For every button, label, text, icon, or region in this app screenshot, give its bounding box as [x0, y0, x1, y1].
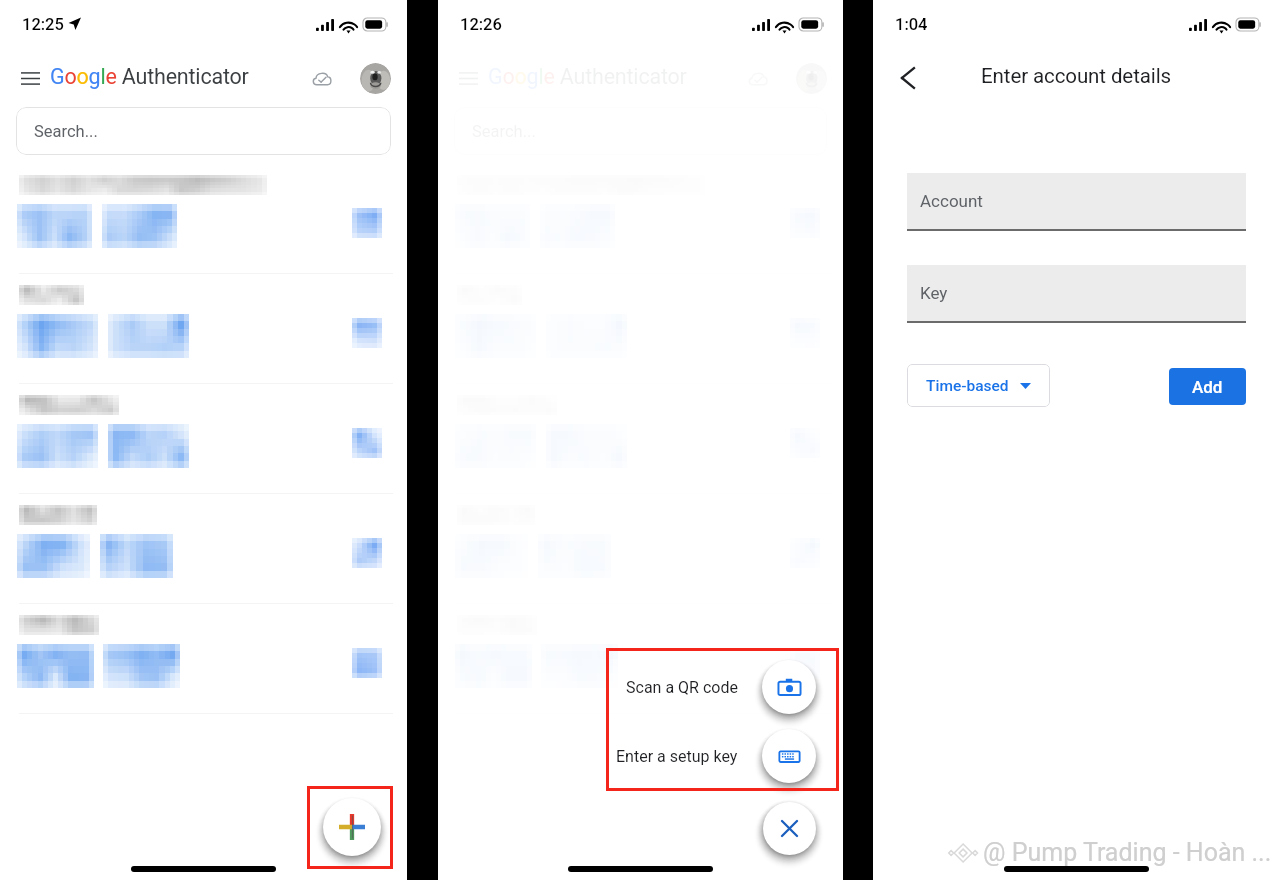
button[interactable]: Open navigation menu	[453, 63, 483, 93]
button[interactable]: Enter a setup key	[438, 727, 818, 785]
button[interactable]	[0, 168, 407, 278]
button[interactable]	[0, 278, 407, 388]
button[interactable]: Time-based	[907, 364, 1050, 407]
staticText: Enter account details	[981, 64, 1172, 88]
staticText: 12:26	[460, 15, 502, 34]
button[interactable]: Back	[891, 61, 925, 95]
button[interactable]	[0, 388, 407, 498]
button[interactable]: Account profile	[796, 63, 827, 94]
staticText: 1:04	[895, 15, 928, 34]
staticText: 12:25	[22, 15, 64, 34]
button[interactable]: Scan a QR code	[438, 658, 818, 716]
staticText: Add	[1192, 377, 1223, 397]
button[interactable]: Close menu	[763, 802, 816, 855]
button[interactable]: Account	[907, 173, 1246, 229]
button[interactable]: Account profile	[360, 63, 391, 94]
button[interactable]: Cloud sync status	[307, 63, 337, 93]
staticText: Google Authenticator	[488, 64, 687, 89]
staticText: Search...	[472, 122, 536, 141]
staticText: Key	[920, 283, 948, 303]
button[interactable]: Add account	[323, 798, 381, 856]
button[interactable]	[438, 608, 843, 718]
staticText: @ Pump Trading - Hoàn ...	[983, 838, 1272, 867]
button[interactable]: Add	[1169, 368, 1246, 405]
button[interactable]: Open navigation menu	[15, 63, 45, 93]
staticText: Google Authenticator	[50, 64, 249, 89]
staticText: Account	[920, 191, 983, 211]
staticText: Search...	[34, 122, 98, 141]
staticText: Enter a setup key	[616, 747, 738, 766]
staticText: Time-based	[926, 377, 1009, 395]
staticText: Scan a QR code	[626, 678, 738, 697]
button[interactable]: Key	[907, 265, 1246, 321]
button[interactable]	[0, 498, 407, 608]
button[interactable]: Search...	[16, 107, 391, 155]
button[interactable]	[0, 608, 407, 718]
